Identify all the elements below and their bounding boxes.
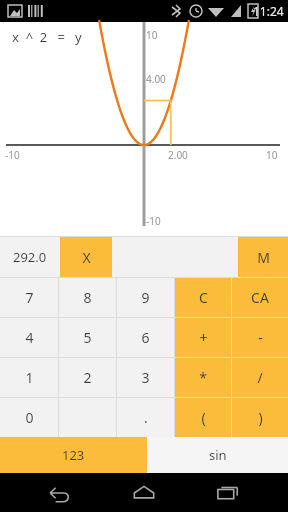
button[interactable]: Back: [36, 473, 84, 512]
staticText: 123: [62, 446, 85, 464]
staticText: 1: [25, 368, 34, 387]
button[interactable]: 0: [0, 398, 58, 437]
staticText: .: [144, 408, 148, 427]
button[interactable]: 1: [0, 358, 58, 397]
button[interactable]: 5: [59, 318, 116, 357]
staticText: 4.00: [146, 72, 166, 86]
button[interactable]: Recent apps: [204, 473, 252, 512]
button[interactable]: X: [60, 237, 112, 277]
button[interactable]: .: [117, 398, 174, 437]
staticText: 0: [25, 408, 34, 427]
button[interactable]: 8: [59, 278, 116, 317]
button[interactable]: 6: [117, 318, 174, 357]
button[interactable]: 4: [0, 318, 58, 357]
staticText: -10: [5, 148, 20, 162]
button[interactable]: (: [175, 398, 231, 437]
staticText: sin: [209, 446, 227, 464]
staticText: 7: [25, 288, 34, 307]
staticText: C: [199, 288, 208, 307]
button[interactable]: ): [232, 398, 288, 437]
staticText: *: [199, 368, 207, 387]
staticText: M: [257, 248, 270, 267]
staticText: 6: [141, 328, 150, 347]
staticText: 9: [141, 288, 150, 307]
staticText: CA: [251, 288, 269, 307]
button[interactable]: -: [232, 318, 288, 357]
staticText: 5: [83, 328, 92, 347]
staticText: -10: [146, 214, 161, 228]
button[interactable]: M: [238, 237, 288, 277]
button[interactable]: Home: [120, 473, 168, 512]
staticText: 3: [141, 368, 150, 387]
staticText: 4: [25, 328, 34, 347]
staticText: 11:24: [253, 3, 284, 19]
staticText: 8: [83, 288, 92, 307]
button[interactable]: +: [175, 318, 231, 357]
staticText: -: [258, 328, 263, 347]
staticText: 2: [83, 368, 92, 387]
button[interactable]: sin: [147, 437, 288, 473]
staticText: +: [199, 328, 208, 347]
staticText: X: [82, 248, 91, 267]
button[interactable]: 2: [59, 358, 116, 397]
button[interactable]: C: [175, 278, 231, 317]
button[interactable]: 9: [117, 278, 174, 317]
staticText: /: [257, 368, 263, 387]
button[interactable]: CA: [232, 278, 288, 317]
staticText: 10: [266, 148, 278, 162]
staticText: (: [201, 408, 206, 427]
button[interactable]: *: [175, 358, 231, 397]
staticText: 10: [146, 28, 158, 42]
button[interactable]: /: [232, 358, 288, 397]
button[interactable]: 3: [117, 358, 174, 397]
button[interactable]: 7: [0, 278, 58, 317]
staticText: ): [258, 408, 263, 427]
button[interactable]: 123: [0, 437, 147, 473]
staticText: 292.0: [13, 248, 47, 266]
staticText: x ^ 2 = y: [12, 28, 82, 46]
staticText: 2.00: [168, 148, 188, 162]
